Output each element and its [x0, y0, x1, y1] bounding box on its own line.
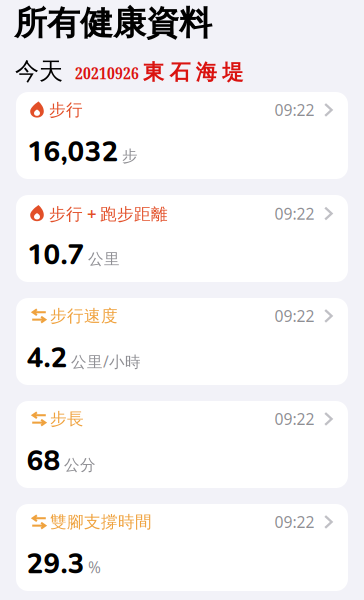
staticText: 堤 — [222, 59, 243, 85]
staticText: 步行 + 跑步距離 — [49, 202, 168, 224]
staticText: 20210926 — [75, 62, 139, 84]
staticText: % — [88, 557, 101, 577]
staticText: 步行速度 — [50, 306, 118, 326]
staticText: 海 — [196, 59, 217, 85]
button[interactable]: 步行速度 — [16, 298, 348, 385]
button[interactable]: 步行 — [16, 92, 348, 179]
staticText: 雙腳支撐時間 — [50, 512, 152, 532]
staticText: 29.3 — [26, 546, 84, 579]
staticText: 09:22 — [274, 99, 314, 120]
staticText: 步長 — [50, 409, 84, 429]
staticText: 東 — [143, 59, 164, 85]
staticText: 步行 — [49, 100, 83, 120]
staticText: 公里/小時 — [71, 351, 141, 372]
staticText: 10.7 — [26, 237, 84, 270]
staticText: 4.2 — [26, 340, 67, 373]
staticText: 09:22 — [274, 511, 314, 532]
staticText: 09:22 — [274, 305, 314, 326]
staticText: 公分 — [64, 455, 96, 474]
staticText: 步 — [122, 146, 138, 165]
staticText: 所有健康資料 — [14, 3, 212, 43]
staticText: 石 — [169, 59, 190, 85]
staticText: 68 — [26, 443, 60, 476]
button[interactable]: 雙腳支撐時間 — [16, 504, 348, 591]
button[interactable]: 步行 + 跑步距離 — [16, 195, 348, 282]
staticText: 09:22 — [274, 203, 314, 224]
staticText: 公里 — [88, 249, 120, 268]
staticText: 16,032 — [26, 134, 118, 167]
button[interactable]: 步長 — [16, 401, 348, 488]
staticText: 09:22 — [274, 408, 314, 429]
staticText: 今天 — [15, 56, 63, 86]
